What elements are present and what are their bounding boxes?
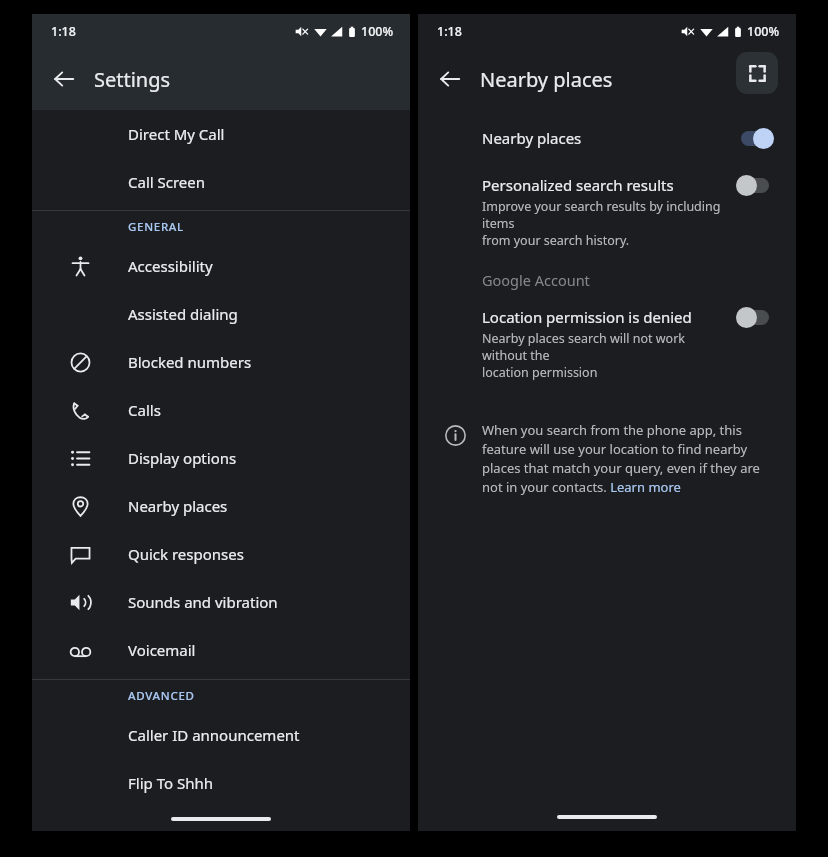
button[interactable]: Assisted dialing xyxy=(32,290,410,338)
staticText: 1:18 xyxy=(437,23,462,40)
button[interactable]: Back xyxy=(428,57,472,101)
staticText: Caller ID announcement xyxy=(128,725,300,745)
button[interactable]: Blocked numbers xyxy=(32,338,410,386)
staticText: Personalized search results xyxy=(482,175,674,195)
staticText: Calls xyxy=(128,400,161,420)
staticText: Flip To Shhh xyxy=(128,773,213,793)
staticText: GENERAL xyxy=(128,219,184,235)
button[interactable]: Direct My Call xyxy=(32,110,410,158)
button[interactable]: Display options xyxy=(32,434,410,482)
button[interactable]: Flip To Shhh xyxy=(32,759,410,807)
staticText: When you search from the phone app, this… xyxy=(482,421,770,496)
staticText: Nearby places xyxy=(482,128,582,148)
staticText: 1:18 xyxy=(51,23,76,40)
staticText: Display options xyxy=(128,448,237,468)
button[interactable]: Calls xyxy=(32,386,410,434)
button[interactable]: Caller ID announcement xyxy=(32,711,410,759)
staticText: Sounds and vibration xyxy=(128,592,278,612)
button[interactable]: Back xyxy=(42,57,86,101)
staticText: Assisted dialing xyxy=(128,304,238,324)
button[interactable]: Sounds and vibration xyxy=(32,578,410,626)
staticText: Improve your search results by including… xyxy=(482,198,726,249)
staticText: Location permission is denied xyxy=(482,307,692,327)
staticText: Blocked numbers xyxy=(128,352,252,372)
button[interactable]: Fullscreen xyxy=(736,52,778,94)
staticText: Call Screen xyxy=(128,172,206,192)
button[interactable]: Accessibility xyxy=(32,242,410,290)
button[interactable]: Quick responses xyxy=(32,530,410,578)
staticText: Direct My Call xyxy=(128,124,225,144)
staticText: Nearby places search will not work witho… xyxy=(482,330,726,381)
staticText: Voicemail xyxy=(128,640,196,660)
staticText: Quick responses xyxy=(128,544,244,564)
staticText: Settings xyxy=(94,66,171,93)
staticText: Nearby places xyxy=(128,496,228,516)
staticText: Nearby places xyxy=(480,66,613,93)
button[interactable]: Call Screen xyxy=(32,158,410,206)
staticText: 100% xyxy=(361,23,394,40)
button[interactable]: Nearby places xyxy=(32,482,410,530)
staticText: Google Account xyxy=(482,270,590,290)
button[interactable]: Personalized search results xyxy=(418,159,796,259)
staticText: 100% xyxy=(747,23,780,40)
button[interactable]: Nearby places xyxy=(418,110,796,159)
staticText: Accessibility xyxy=(128,256,213,276)
button[interactable]: Location permission is denied xyxy=(418,301,796,391)
staticText: ADVANCED xyxy=(128,688,195,704)
button[interactable]: Voicemail xyxy=(32,626,410,674)
